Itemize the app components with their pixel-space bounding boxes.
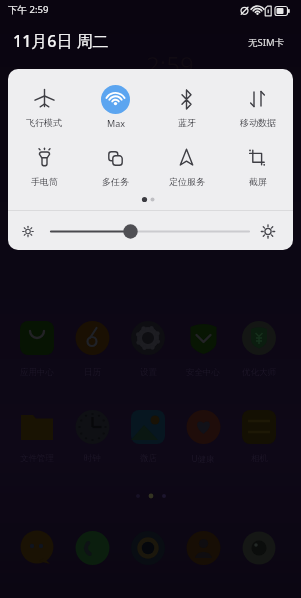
staticText: 定位服务 (169, 176, 205, 187)
staticText: 手电筒 (31, 176, 58, 187)
staticText: 11月6日 周二 (13, 30, 109, 52)
staticText: 下午 2:59 (8, 3, 49, 16)
button[interactable]: 移动数据 (222, 85, 293, 128)
staticText: 截屏 (249, 176, 267, 187)
staticText: U健康 (191, 453, 215, 465)
staticText: 文件管理 (20, 453, 54, 464)
staticText: 无SIM卡 (248, 36, 285, 49)
staticText: 多任务 (102, 176, 129, 187)
staticText: 设置 (140, 367, 157, 378)
button[interactable]: 手电筒 (8, 144, 80, 187)
staticText: 日历 (84, 367, 101, 378)
button[interactable]: Max (80, 85, 151, 129)
staticText: Max (107, 117, 125, 129)
button[interactable]: 截屏 (222, 144, 293, 187)
staticText: 微店 (140, 453, 157, 464)
button[interactable]: 蓝牙 (151, 85, 222, 128)
button[interactable]: 飞行模式 (8, 85, 80, 128)
staticText: 相机 (251, 453, 268, 464)
staticText: 时钟 (84, 453, 101, 464)
button[interactable]: 多任务 (80, 144, 151, 187)
button[interactable]: 定位服务 (151, 144, 222, 187)
staticText: 优化大师 (242, 367, 276, 378)
button[interactable] (18, 217, 283, 247)
staticText: 2:59 (146, 48, 194, 81)
staticText: 移动数据 (240, 117, 276, 128)
staticText: 飞行模式 (26, 117, 62, 128)
staticText: 安全中心 (186, 367, 220, 378)
staticText: 应用中心 (20, 367, 54, 378)
staticText: 蓝牙 (178, 117, 196, 128)
